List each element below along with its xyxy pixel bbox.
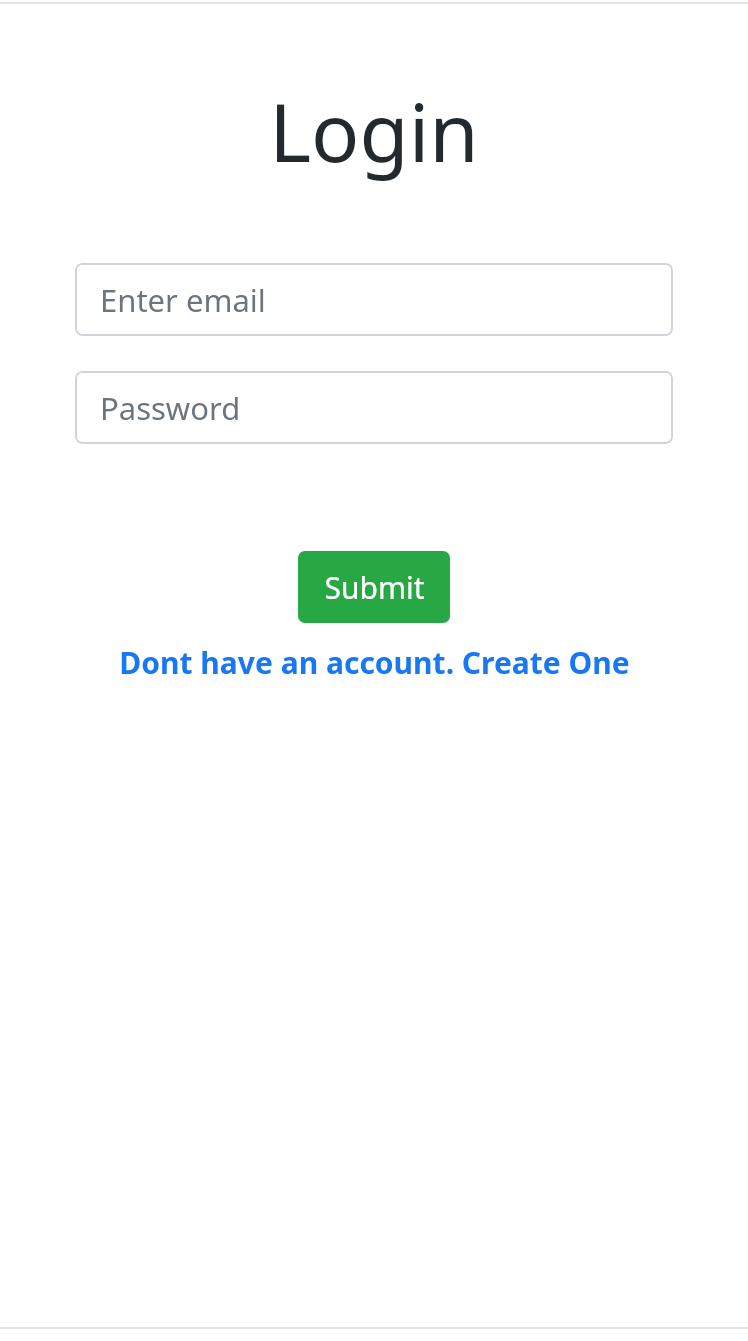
button[interactable]: Dont have an account. Create One	[113, 640, 636, 685]
button[interactable]: Password	[75, 371, 673, 444]
staticText: Enter email	[100, 279, 266, 321]
staticText: Login	[269, 76, 479, 185]
staticText: Dont have an account. Create One	[119, 642, 630, 683]
staticText: Submit	[324, 567, 425, 608]
button[interactable]: Submit	[298, 551, 450, 623]
staticText: Password	[100, 387, 241, 429]
button[interactable]: Enter email	[75, 263, 673, 336]
